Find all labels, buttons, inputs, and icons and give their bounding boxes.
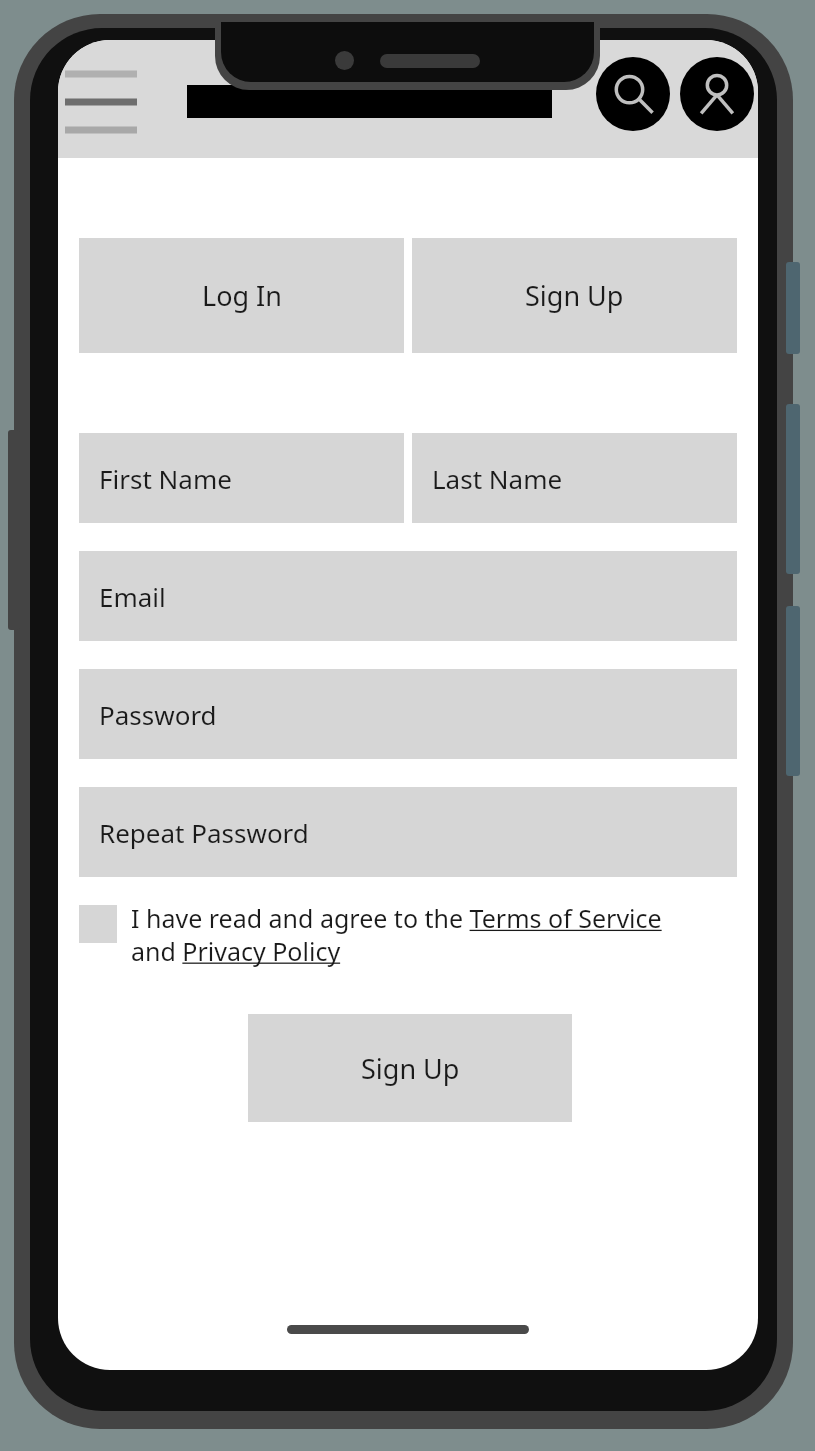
staticText: Sign Up	[525, 277, 624, 314]
button[interactable]: Logo	[187, 85, 552, 118]
staticText: Last Name	[432, 461, 563, 496]
button[interactable]: First Name	[79, 433, 404, 523]
button[interactable]: Password	[79, 669, 737, 759]
button[interactable]: Log In	[79, 238, 404, 353]
staticText: Email	[99, 579, 166, 614]
button[interactable]: Account	[680, 57, 754, 131]
button[interactable]: I have read and agree to the Terms of Se…	[79, 901, 737, 968]
button[interactable]: Sign Up	[412, 238, 737, 353]
staticText: Repeat Password	[99, 815, 309, 850]
button[interactable]: Email	[79, 551, 737, 641]
staticText: Log In	[202, 277, 282, 314]
staticText: Sign Up	[361, 1050, 460, 1087]
staticText: Password	[99, 697, 217, 732]
button[interactable]: Menu	[65, 60, 145, 130]
button[interactable]: Sign Up	[248, 1014, 572, 1122]
staticText: First Name	[99, 461, 232, 496]
button[interactable]: Last Name	[412, 433, 737, 523]
button[interactable]: Repeat Password	[79, 787, 737, 877]
staticText: I have read and agree to the Terms of Se…	[131, 901, 662, 968]
button[interactable]: Search	[596, 57, 670, 131]
